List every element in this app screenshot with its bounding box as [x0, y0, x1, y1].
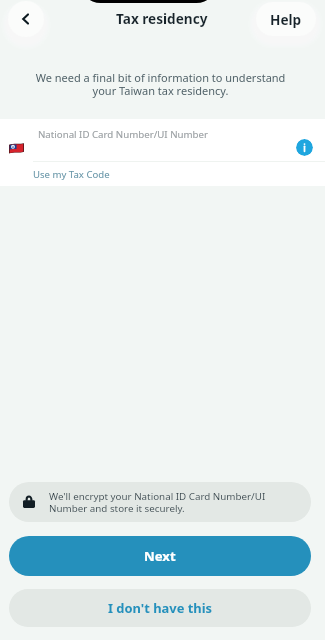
staticText: We'll encrypt your National ID Card Numb… [49, 490, 283, 515]
button[interactable]: Use my Tax Code [33, 168, 110, 181]
button[interactable]: Help [256, 2, 316, 36]
button[interactable]: Country: Taiwan [9, 143, 24, 154]
staticText: We need a final bit of information to un… [28, 70, 293, 98]
button[interactable]: Next [9, 536, 311, 576]
staticText: Next [144, 547, 176, 565]
button[interactable]: More information [296, 139, 313, 156]
button[interactable]: Back [8, 1, 44, 37]
button[interactable]: I don't have this [9, 589, 311, 627]
staticText: Use my Tax Code [33, 168, 110, 181]
staticText: Tax residency [116, 9, 208, 28]
button[interactable]: We'll encrypt your National ID Card Numb… [9, 482, 311, 522]
staticText: I don't have this [108, 599, 213, 617]
staticText: Help [270, 10, 302, 29]
staticText: National ID Card Number/UI Number [38, 128, 208, 141]
